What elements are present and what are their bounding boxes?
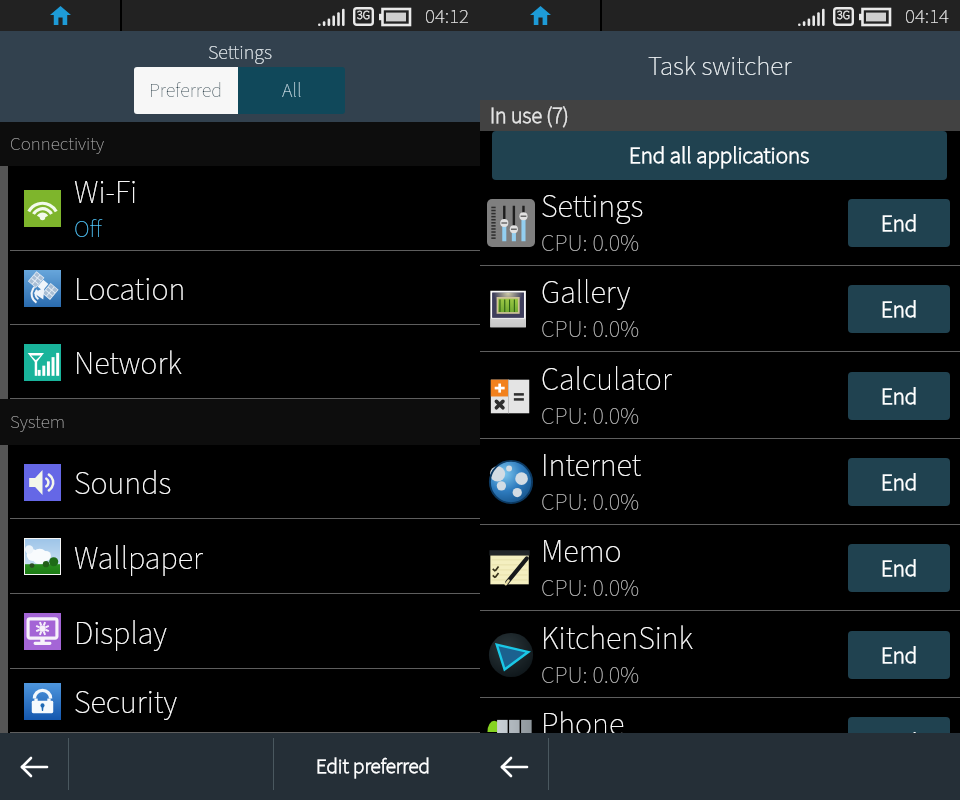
button[interactable]: End [848,199,950,247]
button[interactable]: End all applications [492,131,947,180]
staticText: Security [74,680,177,726]
button[interactable]: Location [0,251,480,325]
button[interactable]: Phone [480,698,960,733]
staticText: Display [74,611,167,657]
staticText: Connectivity [10,131,105,158]
button[interactable]: End [848,285,950,333]
button[interactable]: KitchenSink [480,612,960,698]
staticText: Off [74,212,102,246]
staticText: 3G [837,7,850,24]
staticText: End [881,552,918,585]
button[interactable]: End [848,717,950,733]
button[interactable]: Back [0,733,68,800]
staticText: 3G [357,7,370,24]
staticText: CPU: 0.0% [541,485,640,519]
staticText: Memo [541,529,622,575]
staticText: End [881,293,918,326]
staticText: System [10,409,66,436]
button[interactable]: All [238,67,345,114]
button[interactable]: Gallery [480,266,960,352]
button[interactable]: Edit preferred [274,733,480,800]
staticText: Phone [541,702,625,733]
staticText: Network [74,341,182,387]
button[interactable]: Display [0,594,480,669]
button[interactable]: Sounds [0,445,480,519]
button[interactable]: End [848,372,950,420]
staticText: Sounds [74,461,172,507]
button[interactable]: Home [480,0,600,31]
button[interactable]: Calculator [480,353,960,439]
button[interactable]: Preferred [134,67,238,114]
staticText: Settings [541,184,644,230]
staticText: End [881,639,918,672]
button[interactable]: End [848,544,950,592]
staticText: End all applications [629,139,810,172]
button[interactable]: Internet [480,439,960,525]
staticText: Preferred [149,77,223,105]
staticText: End [881,207,918,240]
button[interactable]: Network [0,325,480,399]
staticText: Edit preferred [316,751,430,781]
staticText: CPU: 0.0% [541,571,640,605]
staticText: 04:14 [905,1,950,31]
button[interactable]: Wi-Fi [0,166,480,251]
staticText: Location [74,267,186,313]
staticText: CPU: 0.0% [541,658,640,692]
staticText: End [881,380,918,413]
staticText: All [282,77,302,105]
staticText: Calculator [541,357,672,403]
staticText: Gallery [541,270,631,316]
button[interactable]: Back [480,733,548,800]
staticText: 04:12 [425,1,470,31]
button[interactable]: Memo [480,525,960,611]
staticText: CPU: 0.0% [541,226,640,260]
button[interactable]: End [848,458,950,506]
staticText: CPU: 0.0% [541,312,640,346]
staticText: CPU: 0.0% [541,399,640,433]
button[interactable]: Home [0,0,120,31]
staticText: Wallpaper [74,536,203,582]
button[interactable]: Settings [480,180,960,266]
staticText: Wi-Fi [74,170,138,216]
staticText: Internet [541,443,642,489]
staticText: Task switcher [648,47,792,85]
staticText: Settings [208,39,272,67]
staticText: End [881,725,918,733]
button[interactable]: Wallpaper [0,519,480,594]
staticText: In use (7) [490,100,569,131]
staticText: End [881,466,918,499]
button[interactable]: Security [0,669,480,733]
staticText: KitchenSink [541,616,694,662]
button[interactable]: End [848,631,950,679]
